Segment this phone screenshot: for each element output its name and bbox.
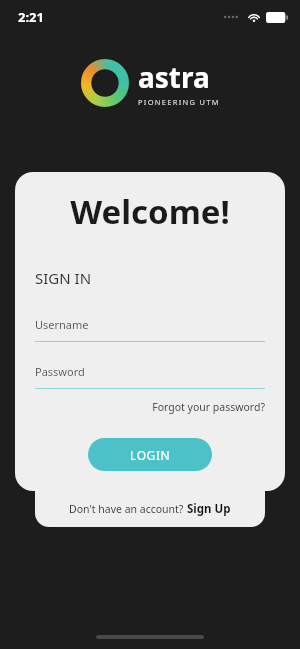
button[interactable]: Don't have an account?	[35, 491, 265, 527]
staticText: Sign Up	[187, 501, 231, 517]
button[interactable]: Username	[35, 317, 265, 342]
staticText: Username	[35, 317, 89, 332]
button[interactable]: LOGIN	[88, 438, 212, 471]
staticText: 2:21	[18, 8, 44, 26]
staticText: PIONEERING UTM	[138, 97, 220, 107]
staticText: LOGIN	[130, 447, 171, 463]
button[interactable]: Forgot your password?	[25, 400, 265, 414]
staticText: Don't have an account?	[69, 502, 187, 516]
button[interactable]: Password	[35, 364, 265, 389]
staticText: SIGN IN	[35, 268, 92, 288]
staticText: Welcome!	[25, 189, 275, 234]
staticText: astra	[138, 58, 210, 96]
staticText: Password	[35, 364, 85, 379]
